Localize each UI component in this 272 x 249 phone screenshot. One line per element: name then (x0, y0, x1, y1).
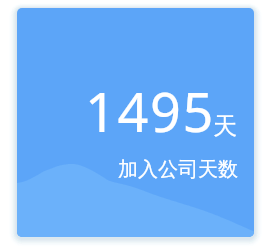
button[interactable]: 1495 (17, 8, 254, 237)
staticText: 1495 (85, 74, 215, 148)
staticText: 加入公司天数 (118, 157, 238, 182)
staticText: 天 (213, 111, 237, 141)
